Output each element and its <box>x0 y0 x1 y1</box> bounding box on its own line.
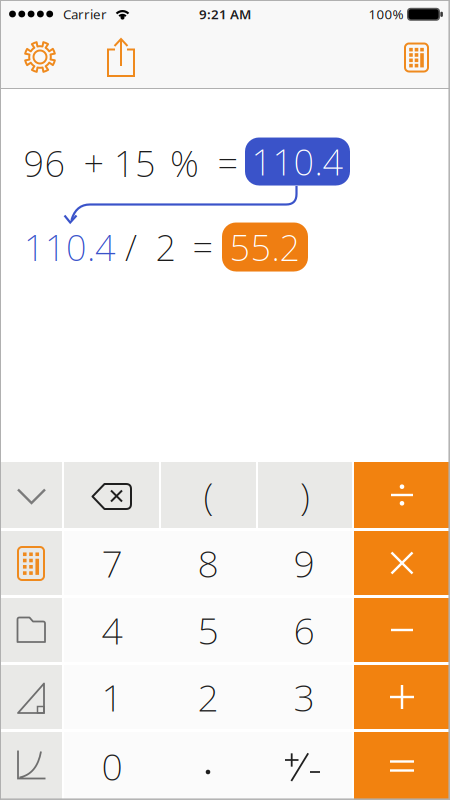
staticText: 110.4 <box>251 138 343 185</box>
button[interactable]: decimal point <box>160 732 256 800</box>
staticText: 9 <box>293 538 314 588</box>
button[interactable]: Calculator <box>0 531 62 595</box>
staticText: = <box>192 223 213 271</box>
button[interactable]: Settings <box>18 35 62 79</box>
button[interactable]: minus <box>354 598 450 662</box>
staticText: ( <box>203 470 213 520</box>
staticText: + <box>83 139 104 187</box>
staticText: 3 <box>293 672 314 722</box>
button[interactable]: 5 <box>160 598 256 662</box>
button[interactable]: 7 <box>64 531 160 595</box>
staticText: 5 <box>197 605 218 655</box>
button[interactable]: Result 110.4 <box>245 137 350 185</box>
button[interactable]: Trigonometry <box>0 665 62 729</box>
staticText: 7 <box>101 538 122 588</box>
button[interactable]: 8 <box>160 531 256 595</box>
staticText: 55.2 <box>229 223 300 271</box>
staticText: = <box>217 139 238 187</box>
button[interactable]: 9 <box>256 531 352 595</box>
staticText: 0 <box>101 741 122 791</box>
button[interactable]: Hide keyboard <box>0 462 62 528</box>
button[interactable]: Backspace <box>64 462 159 528</box>
staticText: 1 <box>101 672 122 722</box>
staticText: 8 <box>197 538 218 588</box>
button[interactable]: = <box>354 732 450 800</box>
button[interactable]: ) <box>258 462 352 528</box>
button[interactable]: 1 <box>64 665 160 729</box>
button[interactable]: Share <box>99 35 143 79</box>
button[interactable]: × <box>354 531 450 595</box>
button[interactable]: 0 <box>64 732 160 800</box>
staticText: ) <box>300 470 310 520</box>
staticText: 6 <box>293 605 314 655</box>
button[interactable]: ( <box>161 462 256 528</box>
staticText: Carrier <box>63 5 107 23</box>
staticText: % <box>170 139 199 187</box>
staticText: 15 <box>114 139 156 187</box>
button[interactable]: 3 <box>256 665 352 729</box>
button[interactable]: plus minus <box>256 732 352 800</box>
button[interactable]: Show calculator keypad <box>394 35 438 79</box>
button[interactable]: History <box>0 598 62 662</box>
button[interactable]: 2 <box>160 665 256 729</box>
button[interactable]: ÷ <box>354 462 450 528</box>
button[interactable]: 6 <box>256 598 352 662</box>
button[interactable]: 4 <box>64 598 160 662</box>
staticText: 110.4 <box>24 223 116 271</box>
button[interactable]: Functions <box>0 732 62 800</box>
button[interactable]: + <box>354 665 450 729</box>
staticText: / <box>125 223 137 271</box>
staticText: 100% <box>368 5 403 23</box>
staticText: 2 <box>197 672 218 722</box>
staticText: 9:21 AM <box>199 5 251 23</box>
staticText: 96 <box>23 139 65 187</box>
button[interactable]: Result 55.2 <box>222 222 308 271</box>
staticText: 4 <box>101 605 122 655</box>
staticText: 2 <box>155 223 176 271</box>
